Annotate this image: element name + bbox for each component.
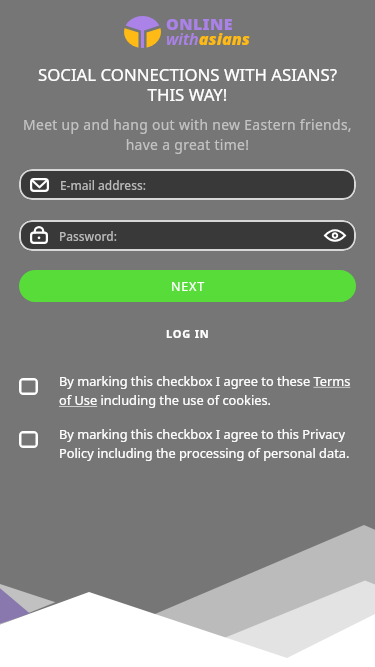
button[interactable]: Password [19, 220, 356, 251]
staticText: withasians [166, 28, 250, 50]
button[interactable]: LOG IN [150, 318, 226, 349]
staticText: Meet up and hang out with new Eastern fr… [0, 115, 375, 155]
staticText: LOG IN [166, 326, 210, 341]
staticText: ONLINE [166, 13, 233, 35]
button[interactable]: E-mail [19, 169, 356, 200]
staticText: SOCIAL CONNECTIONS WITH ASIANS? THIS WAY… [0, 63, 375, 106]
staticText: Password: [59, 228, 117, 244]
other: E-mail [30, 178, 49, 192]
staticText: E-mail address: [60, 177, 146, 193]
staticText: By marking this checkbox I agree to this… [59, 425, 353, 462]
button[interactable]: By marking this checkbox I agree to this… [0, 425, 375, 462]
staticText: By marking this checkbox I agree to thes… [59, 372, 353, 409]
button[interactable]: By marking this checkbox I agree to thes… [0, 372, 375, 409]
other: Password [30, 227, 48, 244]
other: Show password [324, 229, 346, 242]
staticText: NEXT [171, 278, 205, 295]
button[interactable]: NEXT [19, 270, 356, 302]
